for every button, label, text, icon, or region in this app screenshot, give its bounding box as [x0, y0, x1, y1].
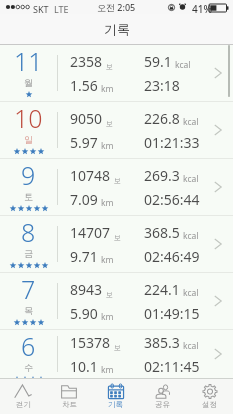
staticText: km [101, 197, 114, 209]
staticText: km [101, 254, 114, 266]
staticText: kcal [183, 116, 199, 128]
staticText: kcal [183, 230, 199, 242]
staticText: km [101, 83, 114, 95]
staticText: 목 [24, 305, 33, 316]
staticText: 15378 [70, 333, 111, 352]
button[interactable]: 7 [0, 273, 233, 330]
staticText: 59.1 [144, 52, 172, 71]
button[interactable]: 6 [0, 330, 233, 378]
staticText: 385.3 [144, 333, 180, 352]
staticText: 기록 [108, 400, 123, 409]
staticText: 보 [114, 233, 121, 242]
button[interactable]: 11 [0, 45, 233, 102]
staticText: 금 [24, 248, 33, 259]
staticText: 10.1 [70, 357, 98, 376]
button[interactable]: Walk [0, 379, 46, 414]
staticText: 10 [14, 101, 43, 135]
staticText: 14707 [70, 223, 111, 242]
staticText: 1.56 [70, 76, 98, 95]
button[interactable]: 8 [0, 216, 233, 273]
staticText: 6 [21, 329, 36, 363]
button[interactable]: Share [139, 379, 186, 414]
staticText: 공유 [155, 400, 170, 409]
staticText: 9.71 [70, 247, 98, 266]
staticText: 7.09 [70, 190, 98, 209]
staticText: 8 [21, 215, 36, 249]
staticText: 오전 2:05 [97, 1, 136, 13]
staticText: km [101, 364, 114, 376]
staticText: 02:56:44 [144, 190, 200, 209]
staticText: 01:21:33 [144, 133, 200, 152]
staticText: 9 [21, 158, 36, 192]
staticText: 10748 [70, 166, 111, 185]
staticText: 보 [114, 343, 121, 352]
staticText: 보 [106, 290, 113, 299]
staticText: 269.3 [144, 166, 180, 185]
staticText: LTE [54, 3, 69, 15]
staticText: 11 [14, 44, 43, 78]
staticText: 226.8 [144, 109, 180, 128]
staticText: 월 [24, 77, 33, 88]
staticText: 224.1 [144, 280, 180, 299]
staticText: 01:49:15 [144, 304, 200, 323]
staticText: 368.5 [144, 223, 180, 242]
staticText: 5.97 [70, 133, 98, 152]
staticText: km [101, 140, 114, 152]
staticText: 02:46:49 [144, 247, 200, 266]
button[interactable]: Record [92, 379, 139, 414]
staticText: 보 [106, 119, 113, 128]
button[interactable]: Chart [46, 379, 92, 414]
staticText: 차트 [62, 400, 77, 409]
staticText: 토 [24, 191, 33, 202]
staticText: 02:11:45 [144, 357, 200, 376]
staticText: 기록 [104, 21, 130, 37]
staticText: kcal [183, 340, 199, 352]
staticText: 8943 [70, 280, 103, 299]
button[interactable]: 9 [0, 159, 233, 216]
staticText: 수 [24, 362, 33, 373]
staticText: 걷기 [16, 400, 31, 409]
staticText: km [101, 311, 114, 323]
staticText: kcal [175, 59, 191, 71]
staticText: kcal [183, 287, 199, 299]
staticText: 7 [21, 272, 36, 306]
button[interactable]: Settings [186, 379, 233, 414]
staticText: 일 [24, 134, 33, 145]
button[interactable]: 10 [0, 102, 233, 159]
staticText: 2358 [70, 52, 103, 71]
staticText: 9050 [70, 109, 103, 128]
staticText: 보 [114, 176, 121, 185]
staticText: 보 [106, 62, 113, 71]
staticText: 설정 [202, 400, 217, 409]
staticText: 41% [192, 2, 212, 16]
staticText: kcal [183, 173, 199, 185]
staticText: 5.90 [70, 304, 98, 323]
staticText: 23:18 [144, 76, 180, 95]
staticText: SKT [33, 3, 49, 15]
